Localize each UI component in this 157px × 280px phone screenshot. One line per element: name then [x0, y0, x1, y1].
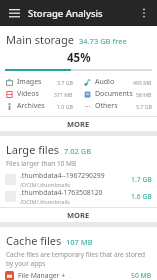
button[interactable]: Others	[78, 100, 157, 112]
staticText: /DCIM/.thumbnails	[20, 181, 71, 188]
staticText: /DCIM/.thumbnails	[20, 198, 71, 205]
button[interactable]: Documents	[78, 88, 157, 100]
staticText: 34.73 GB free	[79, 36, 127, 46]
staticText: .thumbdata4-1763508120	[20, 188, 103, 197]
staticText: 1.7 GB	[131, 175, 152, 184]
staticText: Cache files are temporary files that are…	[6, 250, 151, 268]
button[interactable]: Images	[0, 76, 78, 88]
staticText: 45%	[67, 50, 91, 66]
staticText: Files larger than 10 MB	[6, 159, 77, 168]
staticText: 107 MB	[66, 237, 93, 247]
button[interactable]: .thumbdata4-1763508120	[0, 188, 157, 205]
staticText: Large files	[6, 142, 60, 157]
staticText: MORE	[67, 210, 90, 220]
staticText: .thumbdata4--1967290299	[20, 171, 105, 180]
staticText: 5.7 GB	[136, 103, 152, 110]
button[interactable]: Videos	[0, 88, 78, 100]
staticText: Others	[95, 101, 118, 111]
staticText: 50 MB	[131, 271, 152, 280]
button[interactable]: Open navigation drawer	[4, 3, 24, 23]
button[interactable]: Archives	[0, 100, 78, 112]
staticText: 7.02 GB	[64, 146, 92, 156]
button[interactable]: MORE	[0, 208, 157, 222]
button[interactable]: Audio	[78, 76, 157, 88]
button[interactable]: MORE	[0, 117, 157, 131]
staticText: 58 MB	[136, 91, 152, 98]
staticText: Main storage	[6, 32, 75, 47]
button[interactable]: More options	[134, 3, 154, 23]
staticText: MORE	[67, 119, 90, 129]
staticText: 3.7 GB	[57, 79, 73, 86]
staticText: Storage Analysis	[28, 7, 103, 20]
staticText: Archives	[17, 101, 45, 111]
staticText: Images	[17, 77, 42, 87]
button[interactable]: .thumbdata4--1967290299	[0, 171, 157, 188]
button[interactable]: File Manager +	[0, 271, 157, 280]
staticText: 371 MB	[54, 91, 73, 98]
staticText: 1.0 GB	[57, 103, 73, 110]
staticText: 495 MB	[133, 79, 152, 86]
staticText: Documents	[95, 89, 133, 99]
staticText: 1.6 GB	[131, 192, 152, 201]
staticText: Cache files	[6, 233, 62, 248]
staticText: Videos	[17, 89, 39, 99]
staticText: File Manager +	[18, 271, 66, 280]
staticText: Audio	[95, 77, 115, 87]
